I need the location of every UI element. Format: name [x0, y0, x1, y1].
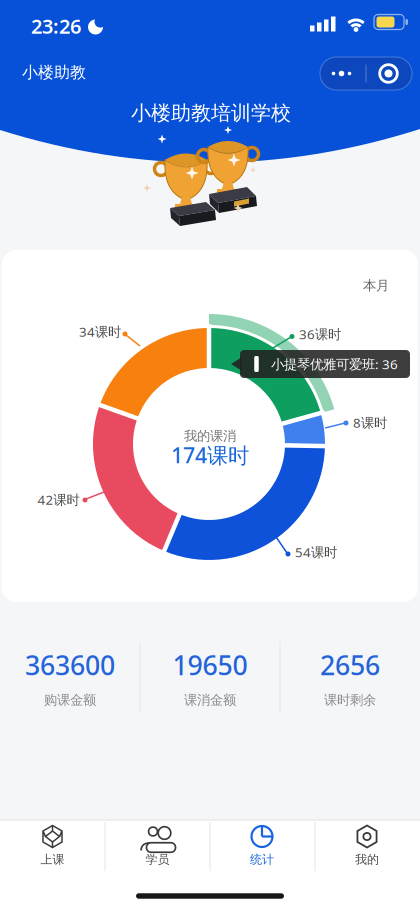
staticText: 23:26 — [31, 13, 81, 39]
staticText: 我的课消 — [184, 428, 236, 444]
button[interactable]: 我的 — [315, 820, 419, 870]
staticText: 42课时 — [37, 491, 79, 508]
staticText: 课消金额 — [184, 692, 236, 708]
staticText: 36课时 — [299, 325, 341, 343]
staticText: 8课时 — [353, 414, 387, 431]
staticText: 小提琴优雅可爱班: 36 — [271, 355, 398, 373]
button[interactable]: 上课 — [0, 820, 104, 870]
button[interactable]: 学员 — [105, 820, 209, 870]
staticText: 19650 — [172, 647, 247, 683]
staticText: 统计 — [250, 852, 274, 867]
staticText: 363600 — [25, 647, 115, 683]
button[interactable]: 统计 — [210, 820, 314, 870]
staticText: 2656 — [320, 647, 380, 683]
staticText: 课时剩余 — [324, 692, 376, 708]
button[interactable]: 本月 — [363, 277, 389, 294]
staticText: 学员 — [145, 852, 169, 867]
staticText: 上课 — [40, 852, 64, 867]
staticText: 本月 — [363, 277, 389, 294]
staticText: 小楼助教培训学校 — [131, 101, 291, 125]
staticText: 小楼助教 — [22, 63, 86, 82]
staticText: 54课时 — [295, 543, 337, 561]
staticText: 购课金额 — [44, 692, 96, 708]
staticText: 34课时 — [79, 323, 121, 340]
button[interactable] — [320, 57, 412, 90]
staticText: 174课时 — [171, 441, 249, 469]
staticText: 我的 — [355, 852, 379, 867]
